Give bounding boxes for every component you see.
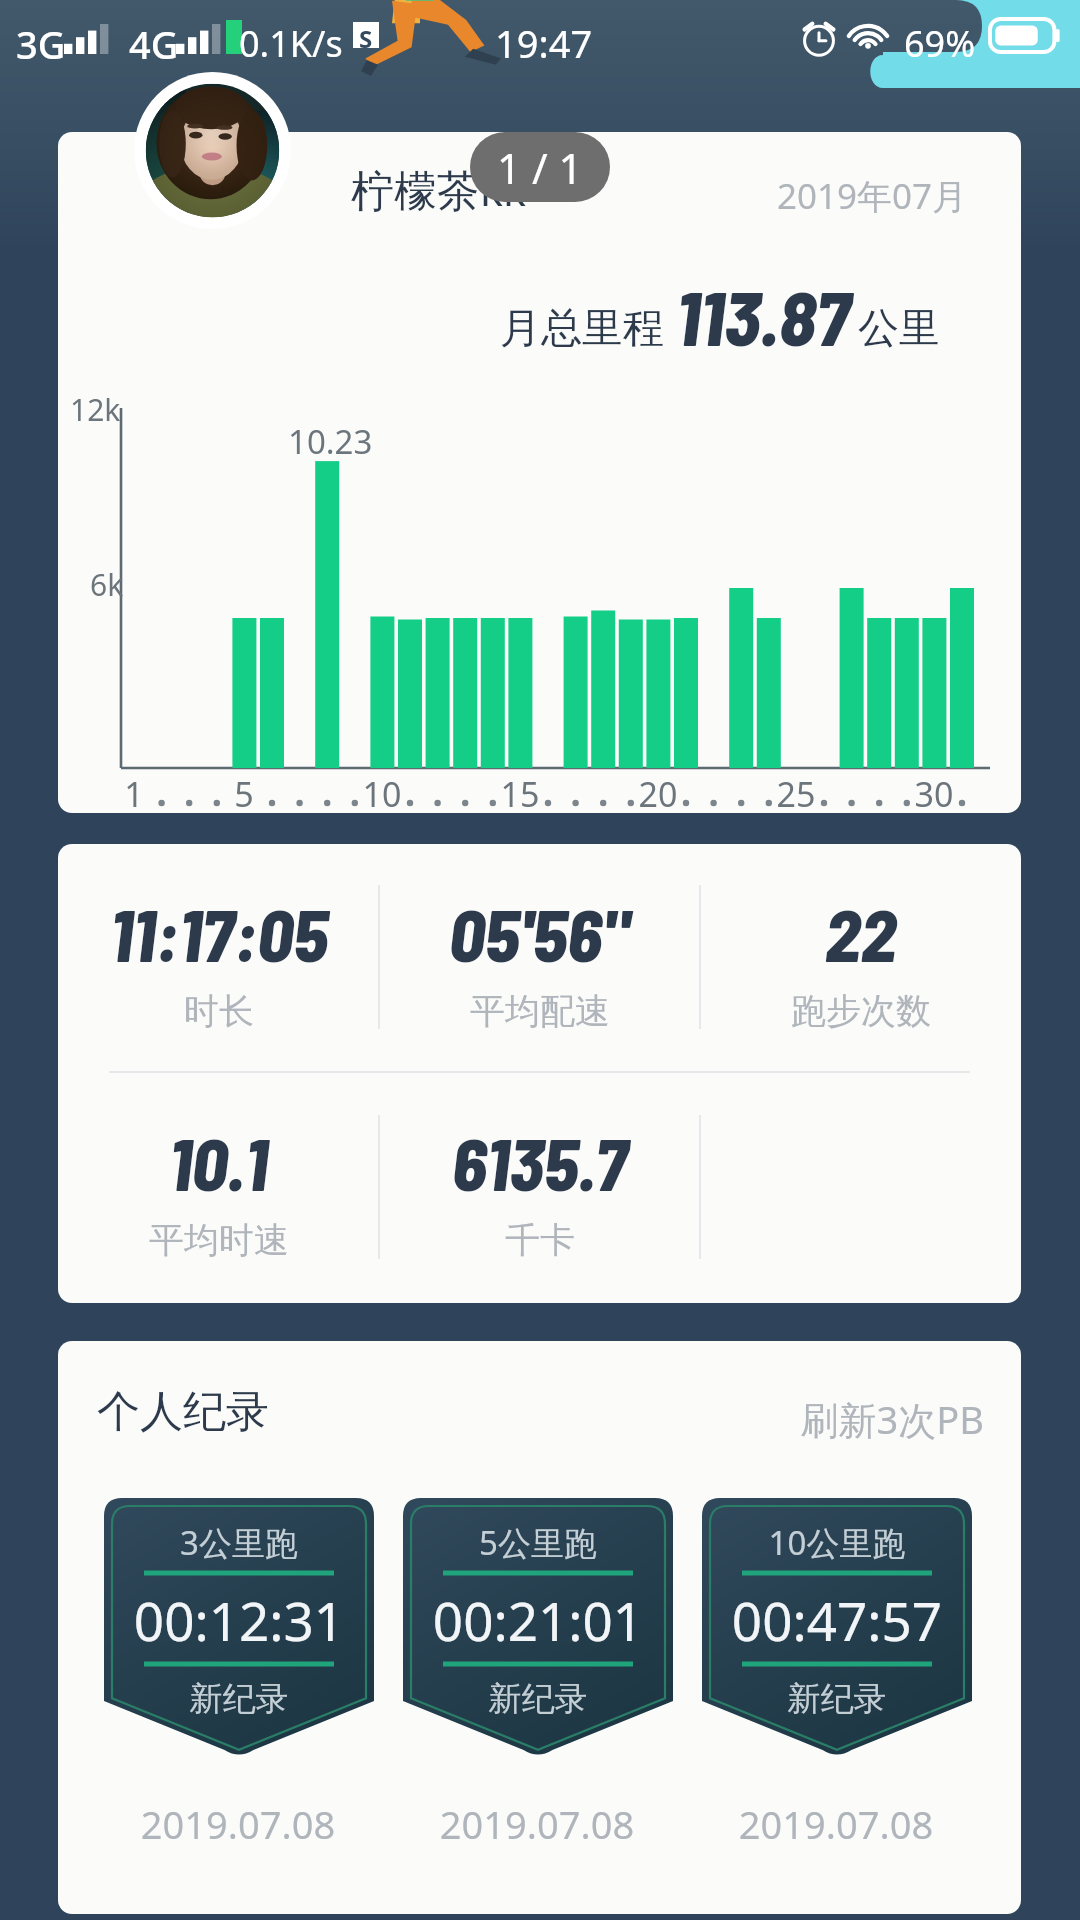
staticText: 2019.07.08 [83, 1798, 393, 1850]
button[interactable]: Profile avatar [134, 72, 291, 229]
staticText: 月总里程 [500, 303, 664, 355]
staticText: 平均配速 [470, 989, 610, 1033]
staticText: 5 [214, 771, 274, 817]
staticText: 2019.07.08 [681, 1798, 991, 1850]
staticText: 10.23 [288, 419, 373, 464]
button[interactable]: 5公里跑 [403, 1498, 673, 1759]
button[interactable]: 11:17:05 [58, 844, 1021, 1303]
staticText: 新纪录 [702, 1678, 972, 1720]
staticText: 00:47:57 [702, 1584, 972, 1656]
staticText: 12k [70, 389, 121, 430]
staticText: 2019.07.08 [382, 1798, 692, 1850]
staticText: 6135.7 [452, 1119, 628, 1205]
button[interactable]: Alarm [800, 18, 838, 56]
staticText: 22 [825, 890, 897, 976]
staticText: 0.1K/s [239, 19, 343, 68]
staticText: 19:47 [495, 17, 593, 69]
button[interactable]: 2019年07月 [777, 172, 968, 220]
button[interactable]: 05'56" [379, 844, 700, 1073]
button[interactable]: 10公里跑 [702, 1498, 972, 1759]
button[interactable]: 刷新3次PB [698, 1393, 984, 1445]
staticText: 10公里跑 [702, 1520, 972, 1565]
staticText: 新纪录 [403, 1678, 673, 1720]
button[interactable]: 22 [700, 844, 1021, 1073]
staticText: 平均时速 [149, 1218, 289, 1262]
button[interactable]: 个人纪录 [58, 1341, 1021, 1914]
staticText: 30 [904, 771, 964, 817]
staticText: 5公里跑 [403, 1520, 673, 1565]
staticText: 个人纪录 [97, 1385, 269, 1439]
staticText: 3公里跑 [104, 1520, 374, 1565]
button[interactable]: 柠檬茶kk [351, 160, 526, 219]
button[interactable] [58, 132, 1021, 813]
staticText: 千卡 [505, 1218, 575, 1262]
button[interactable]: Wi-Fi [845, 20, 891, 50]
button[interactable]: 6135.7 [379, 1073, 700, 1302]
button[interactable]: 3公里跑 [104, 1498, 374, 1759]
staticText: 25 [766, 771, 826, 817]
staticText: 113.87 [676, 270, 850, 361]
staticText: 1 / 1 [497, 139, 583, 196]
staticText: 00:12:31 [104, 1584, 374, 1656]
button[interactable]: Battery [990, 19, 1060, 52]
button[interactable]: 1 / 1 [470, 132, 610, 202]
button[interactable]: 11:17:05 [58, 844, 379, 1073]
staticText: 6k [90, 564, 124, 605]
staticText: S [359, 22, 373, 48]
staticText: 4G [129, 18, 179, 70]
other: Running [364, 0, 504, 76]
staticText: 10 [352, 771, 412, 817]
staticText: 时长 [184, 989, 254, 1033]
staticText: 跑步次数 [791, 989, 931, 1033]
staticText: 10.1 [169, 1119, 268, 1205]
staticText: 1 [104, 771, 164, 817]
staticText: 05'56" [449, 890, 630, 976]
button[interactable]: 10.1 [58, 1073, 379, 1302]
staticText: 3G [16, 18, 66, 70]
staticText: 15 [490, 771, 550, 817]
staticText: 公里 [858, 303, 940, 355]
staticText: 20 [628, 771, 688, 817]
staticText: 11:17:05 [110, 890, 328, 976]
staticText: 00:21:01 [403, 1584, 673, 1656]
staticText: 新纪录 [104, 1678, 374, 1720]
staticText: 69% [904, 19, 976, 68]
